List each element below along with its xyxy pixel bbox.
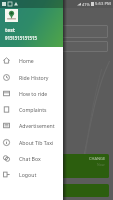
button[interactable]: How to ride [0, 85, 63, 101]
staticText: 5:53 PM [95, 1, 111, 7]
staticText: Ride History [19, 74, 49, 81]
staticText: Chat Box [19, 155, 41, 162]
button[interactable]: Logout [0, 166, 63, 182]
staticText: Advertisement [19, 122, 55, 129]
staticText: Home [19, 57, 34, 64]
staticText: 9151515151515 [5, 35, 37, 41]
staticText: test [5, 27, 15, 34]
button[interactable]: Advertisement [0, 117, 63, 133]
button[interactable]: Chat Box [0, 150, 63, 166]
staticText: Now [97, 162, 105, 167]
button[interactable] [4, 25, 108, 38]
button[interactable] [3, 184, 109, 197]
button[interactable]: CHANGE [3, 154, 109, 178]
button[interactable]: About Tib Taxi [0, 134, 63, 150]
staticText: 41% [82, 2, 90, 7]
button[interactable]: Home [0, 52, 63, 68]
button[interactable] [4, 41, 108, 52]
button[interactable]: Complaints [0, 101, 63, 117]
staticText: CHANGE [89, 156, 106, 161]
staticText: Complaints [19, 106, 47, 113]
staticText: About Tib Taxi [19, 139, 54, 146]
staticText: How to ride [19, 90, 48, 97]
button[interactable]: Ride History [0, 69, 63, 85]
staticText: Logout [19, 171, 37, 178]
